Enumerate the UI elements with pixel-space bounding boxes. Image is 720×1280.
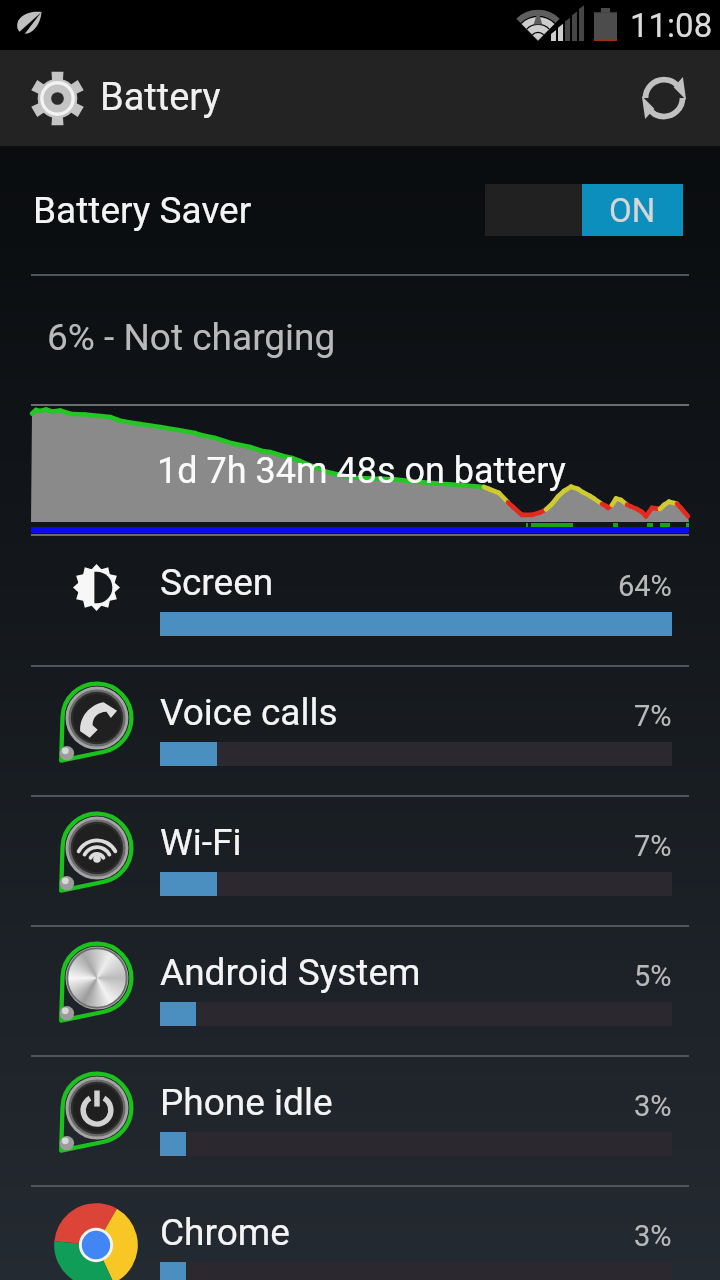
staticText: 5% (634, 959, 672, 993)
staticText: 64% (618, 569, 672, 603)
button[interactable]: Battery Saver (0, 146, 720, 274)
button[interactable]: Phone idle (0, 1055, 720, 1185)
staticText: 11:08 (630, 6, 713, 45)
staticText: 7% (634, 699, 672, 733)
staticText: Battery (100, 75, 221, 120)
staticText: Screen (160, 561, 274, 604)
staticText: Voice calls (160, 691, 338, 734)
staticText: ON (609, 191, 656, 230)
staticText: 1d 7h 34m 48s on battery (157, 450, 566, 492)
button[interactable]: Voice calls (0, 665, 720, 795)
staticText: 3% (634, 1219, 672, 1253)
button[interactable]: Android System (0, 925, 720, 1055)
button[interactable]: Refresh (616, 50, 712, 146)
staticText: Battery Saver (33, 189, 252, 232)
staticText: 6% - Not charging (47, 316, 336, 359)
button[interactable]: Screen (0, 535, 720, 665)
staticText: Chrome (160, 1211, 290, 1254)
button[interactable]: Wi-Fi (0, 795, 720, 925)
staticText: Android System (160, 951, 421, 994)
button[interactable]: Chrome (0, 1185, 720, 1280)
staticText: Phone idle (160, 1081, 333, 1124)
staticText: 3% (634, 1089, 672, 1123)
staticText: Wi-Fi (160, 821, 242, 864)
staticText: 7% (634, 829, 672, 863)
